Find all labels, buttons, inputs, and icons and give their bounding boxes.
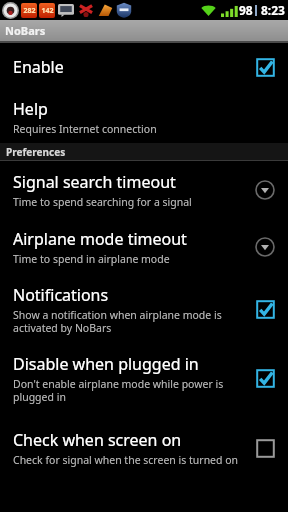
- staticText: Notifications: [13, 284, 109, 306]
- staticText: Show a notification when airplane mode i…: [13, 308, 244, 335]
- button[interactable]: Checked: [252, 296, 278, 322]
- staticText: Don't enable airplane mode while power i…: [13, 377, 244, 404]
- staticText: Airplane mode timeout: [13, 228, 187, 250]
- staticText: Check for signal when the screen is turn…: [13, 453, 239, 467]
- staticText: 142: [41, 6, 54, 16]
- button[interactable]: Unchecked: [252, 435, 278, 461]
- button[interactable]: Airplane mode timeout: [0, 218, 288, 275]
- staticText: NoBars: [5, 23, 46, 38]
- staticText: 98: [239, 2, 253, 18]
- staticText: Time to spend in airplane mode: [13, 252, 170, 266]
- button[interactable]: Disable when plugged in: [0, 343, 288, 413]
- button[interactable]: Enable: [0, 43, 288, 91]
- staticText: Preferences: [6, 145, 66, 159]
- staticText: Enable: [13, 56, 64, 78]
- button[interactable]: Checked: [252, 365, 278, 391]
- button[interactable]: Checked: [252, 54, 278, 80]
- staticText: 282: [23, 6, 36, 16]
- staticText: Time to spend searching for a signal: [13, 195, 192, 209]
- button[interactable]: Open options: [252, 177, 278, 203]
- staticText: Check when screen on: [13, 429, 182, 451]
- button[interactable]: Signal search timeout: [0, 161, 288, 218]
- button[interactable]: Open options: [252, 234, 278, 260]
- staticText: Disable when plugged in: [13, 353, 199, 375]
- staticText: Requires Internet connection: [13, 122, 157, 136]
- button[interactable]: Help: [0, 91, 288, 143]
- staticText: Signal search timeout: [13, 171, 176, 193]
- staticText: Help: [13, 98, 48, 120]
- button[interactable]: Check when screen on: [0, 413, 288, 483]
- button[interactable]: Notifications: [0, 275, 288, 343]
- staticText: 8:23: [261, 2, 285, 18]
